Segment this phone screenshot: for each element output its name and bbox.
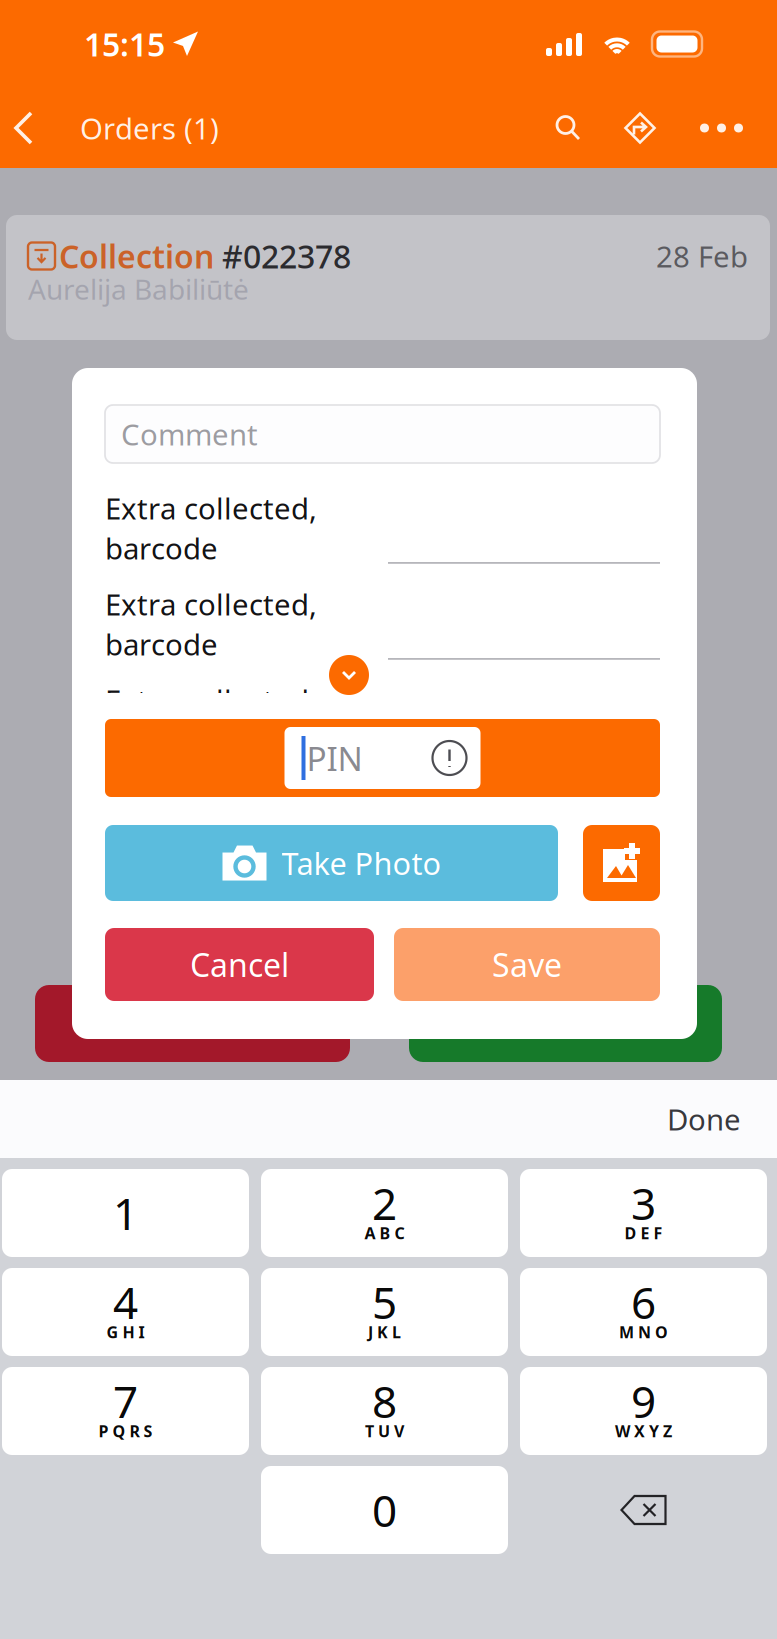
button[interactable]: 9	[520, 1367, 767, 1455]
button[interactable]: 1	[2, 1169, 249, 1257]
staticText: 4	[113, 1273, 138, 1331]
staticText: 9	[631, 1372, 656, 1430]
staticText: #022378	[214, 235, 351, 277]
button[interactable]: 6	[520, 1268, 767, 1356]
button[interactable]: More options	[676, 113, 767, 143]
button[interactable]: 3	[520, 1169, 767, 1257]
staticText: 0	[372, 1481, 397, 1539]
staticText: barcode	[105, 528, 218, 567]
staticText: Orders (1)	[80, 108, 219, 147]
button[interactable]: Take Photo	[105, 825, 558, 901]
button[interactable]: 7	[2, 1367, 249, 1455]
staticText: 3	[631, 1174, 656, 1232]
staticText: Collection	[59, 235, 214, 277]
staticText: Done	[667, 1099, 741, 1138]
button[interactable]: Directions	[604, 111, 676, 145]
staticText: 2	[372, 1174, 397, 1232]
button[interactable]: 4	[2, 1268, 249, 1356]
staticText: 5	[372, 1273, 397, 1331]
staticText: Extra collected,	[105, 584, 317, 623]
staticText: Cancel	[190, 943, 289, 986]
staticText: P Q R S	[98, 1420, 152, 1442]
button[interactable]: Save	[394, 928, 660, 1001]
staticText: Extra collected,	[105, 488, 317, 527]
staticText: Save	[492, 943, 562, 986]
staticText: 8	[372, 1372, 397, 1430]
button[interactable]: Search	[532, 113, 604, 143]
staticText: Aurelija Babiliūtė	[28, 270, 249, 308]
staticText: barcode	[105, 624, 218, 663]
staticText: A B C	[364, 1222, 404, 1244]
button[interactable]: 5	[261, 1268, 508, 1356]
staticText: PIN	[306, 736, 362, 780]
staticText: 7	[113, 1372, 138, 1430]
staticText: Extra collected,	[105, 680, 317, 719]
staticText: G H I	[106, 1321, 144, 1343]
button[interactable]: Done	[649, 1083, 759, 1154]
button[interactable]: 2	[261, 1169, 508, 1257]
staticText: T U V	[365, 1420, 404, 1442]
staticText: W X Y Z	[615, 1420, 672, 1442]
button[interactable]: Add photo from library	[583, 825, 660, 901]
staticText: 6	[631, 1273, 656, 1331]
button[interactable]: Delete	[520, 1466, 767, 1554]
button[interactable]: 8	[261, 1367, 508, 1455]
staticText: M N O	[619, 1321, 668, 1343]
button[interactable]: 0	[261, 1466, 508, 1554]
staticText: Comment	[121, 414, 258, 453]
staticText: D E F	[624, 1222, 662, 1244]
staticText: 15:15	[84, 23, 165, 65]
staticText: 1	[113, 1184, 138, 1242]
staticText: 28 Feb	[656, 236, 748, 275]
staticText: Take Photo	[281, 843, 441, 883]
staticText: J K L	[368, 1321, 401, 1343]
button[interactable]: Cancel	[105, 928, 374, 1001]
button[interactable]: Back	[0, 111, 51, 145]
